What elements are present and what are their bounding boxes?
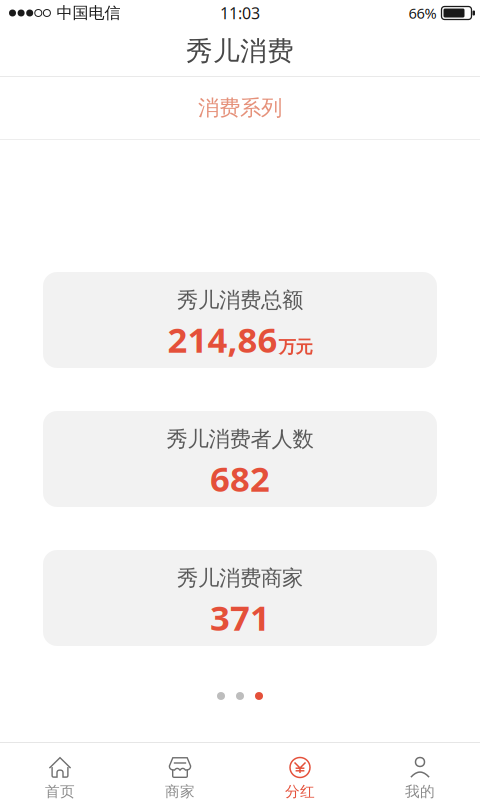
button[interactable]: 首页 (0, 743, 120, 800)
button[interactable]: 秀儿消费商家 (43, 550, 437, 646)
button[interactable]: 商家 (120, 743, 240, 800)
staticText: 我的 (405, 782, 435, 800)
staticText: 682 (210, 455, 270, 501)
staticText: 214,86 (167, 316, 277, 362)
button[interactable]: 秀儿消费者人数 (43, 411, 437, 507)
staticText: 66% (408, 3, 436, 23)
button[interactable]: 分红 (240, 743, 360, 800)
staticText: 中国电信 (56, 3, 120, 23)
button[interactable]: 我的 (360, 743, 480, 800)
staticText: 秀儿消费商家 (177, 565, 303, 591)
staticText: 首页 (45, 782, 75, 800)
button[interactable]: 秀儿消费总额 (43, 272, 437, 368)
button[interactable]: 消费系列 (0, 77, 480, 139)
staticText: 消费系列 (198, 95, 282, 121)
staticText: 分红 (285, 782, 315, 800)
staticText: 秀儿消费者人数 (166, 426, 313, 452)
staticText: 商家 (165, 782, 195, 800)
staticText: 371 (210, 594, 270, 640)
staticText: 万元 (278, 336, 312, 358)
staticText: 11:03 (220, 2, 260, 24)
staticText: 秀儿消费 (186, 35, 294, 67)
staticText: 秀儿消费总额 (177, 287, 303, 313)
